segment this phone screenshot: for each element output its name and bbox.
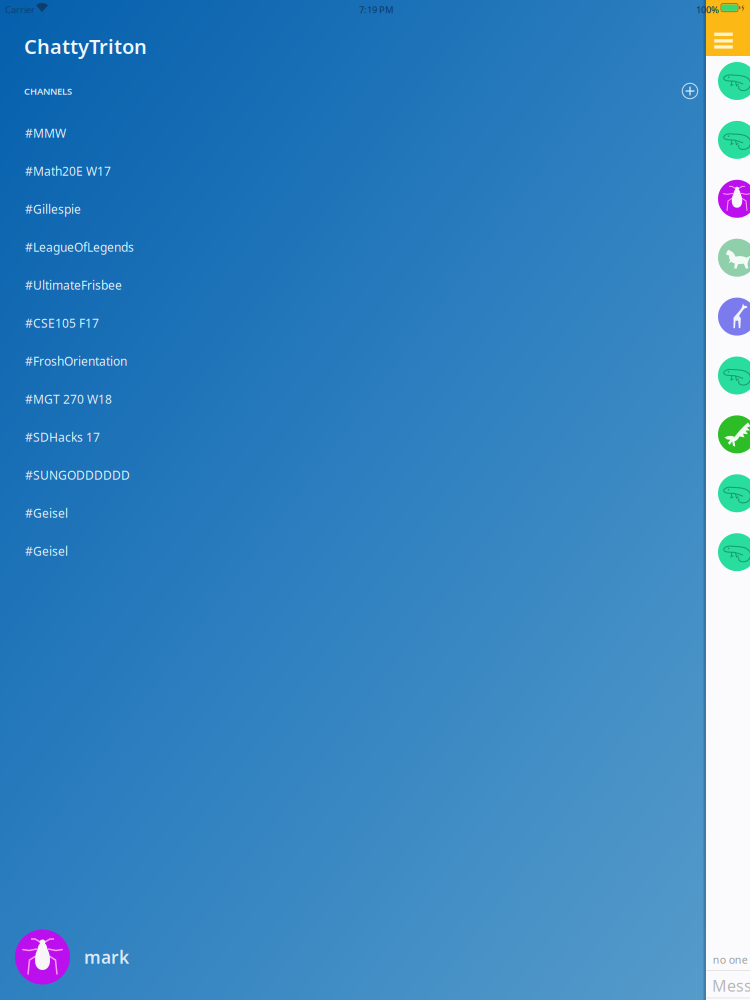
button[interactable]: Add channel bbox=[677, 78, 703, 104]
staticText: #Geisel bbox=[25, 543, 68, 559]
staticText: 7:19 PM bbox=[359, 3, 394, 16]
staticText: #SDHacks 17 bbox=[25, 429, 100, 445]
staticText: Carrier bbox=[5, 3, 35, 16]
button[interactable]: #Gillespie bbox=[0, 190, 706, 228]
button[interactable]: #Geisel bbox=[0, 494, 706, 532]
staticText: #LeagueOfLegends bbox=[25, 239, 134, 255]
staticText: 100% bbox=[696, 3, 719, 16]
staticText: #SUNGODDDDDD bbox=[25, 467, 130, 483]
staticText: ChattyTriton bbox=[24, 33, 147, 60]
staticText: Message bbox=[712, 975, 750, 996]
staticText: #Geisel bbox=[25, 505, 68, 521]
staticText: #UltimateFrisbee bbox=[25, 277, 122, 293]
button[interactable]: #Math20E W17 bbox=[0, 152, 706, 190]
button[interactable]: Menu bbox=[706, 0, 750, 56]
button[interactable]: #LeagueOfLegends bbox=[0, 228, 706, 266]
staticText: #Gillespie bbox=[25, 201, 81, 217]
staticText: #CSE105 F17 bbox=[25, 315, 99, 331]
staticText: CHANNELS bbox=[24, 85, 72, 97]
staticText: #FroshOrientation bbox=[25, 353, 127, 369]
button[interactable]: #FroshOrientation bbox=[0, 342, 706, 380]
staticText: #MMW bbox=[25, 125, 66, 141]
button[interactable]: mark bbox=[0, 921, 706, 993]
staticText: #Math20E W17 bbox=[25, 163, 111, 179]
button[interactable]: #CSE105 F17 bbox=[0, 304, 706, 342]
staticText: no one bbox=[713, 952, 748, 967]
button[interactable]: #Geisel bbox=[0, 532, 706, 570]
button[interactable]: #UltimateFrisbee bbox=[0, 266, 706, 304]
staticText: #MGT 270 W18 bbox=[25, 391, 112, 407]
button[interactable]: #SUNGODDDDDD bbox=[0, 456, 706, 494]
button[interactable]: #MGT 270 W18 bbox=[0, 380, 706, 418]
staticText: mark bbox=[84, 945, 129, 968]
button[interactable]: #MMW bbox=[0, 114, 706, 152]
button[interactable]: #SDHacks 17 bbox=[0, 418, 706, 456]
